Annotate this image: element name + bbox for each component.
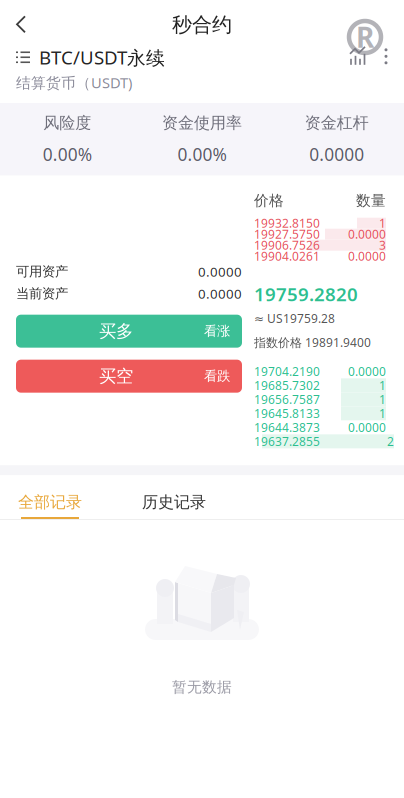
staticText: 资金使用率 <box>162 113 242 133</box>
staticText: 数量 <box>356 192 386 210</box>
staticText: 1 <box>379 405 386 421</box>
staticText: 历史记录 <box>142 492 206 512</box>
staticText: 2 <box>387 433 394 449</box>
staticText: 19704.2190 <box>254 363 320 379</box>
button[interactable]: Chart <box>350 47 366 66</box>
staticText: 0.0000 <box>348 363 386 379</box>
staticText: 0.0000 <box>198 263 242 280</box>
staticText: 结算货币（USDT) <box>16 73 132 92</box>
staticText: 0.0000 <box>348 419 386 435</box>
staticText: BTC/USDT永续 <box>39 45 165 70</box>
staticText: 19932.8150 <box>254 215 320 231</box>
staticText: 当前资产 <box>16 285 68 302</box>
staticText: 0.0000 <box>198 285 242 302</box>
staticText: 19644.3873 <box>254 419 320 435</box>
staticText: 19685.7302 <box>254 377 320 393</box>
staticText: 买空 <box>99 365 133 387</box>
staticText: 风险度 <box>43 113 91 133</box>
staticText: 资金杠杆 <box>305 113 369 133</box>
button[interactable]: 买空 <box>16 360 242 393</box>
staticText: 看涨 <box>204 323 230 339</box>
staticText: 19656.7587 <box>254 391 320 407</box>
staticText: 1 <box>379 377 386 393</box>
staticText: 价格 <box>254 192 284 210</box>
staticText: 1 <box>379 215 386 231</box>
staticText: 3 <box>379 237 386 253</box>
staticText: 19759.2820 <box>254 282 358 306</box>
staticText: 买多 <box>99 320 133 342</box>
staticText: R <box>356 18 374 56</box>
staticText: 看跌 <box>204 368 230 384</box>
button[interactable]: 全部记录 <box>13 492 87 519</box>
staticText: 可用资产 <box>16 263 68 280</box>
staticText: 0.0000 <box>348 248 386 264</box>
staticText: 19904.0261 <box>254 248 320 264</box>
button[interactable]: Back <box>0 5 44 45</box>
staticText: 0.00% <box>177 143 226 166</box>
staticText: 指数价格 19891.9400 <box>254 334 371 350</box>
button[interactable]: BTC/USDT永续 <box>16 45 165 70</box>
staticText: 全部记录 <box>18 492 82 512</box>
staticText: 19927.5750 <box>254 226 320 242</box>
staticText: ≈ US19759.28 <box>254 310 335 326</box>
staticText: 19645.8133 <box>254 405 320 421</box>
staticText: 0.0000 <box>309 143 364 166</box>
staticText: 0.00% <box>43 143 92 166</box>
staticText: 1 <box>379 391 386 407</box>
staticText: 19906.7526 <box>254 237 320 253</box>
staticText: 0.0000 <box>348 226 386 242</box>
button[interactable]: More <box>384 48 388 65</box>
button[interactable]: 买多 <box>16 315 242 348</box>
button[interactable]: 历史记录 <box>137 492 211 519</box>
staticText: 秒合约 <box>172 12 232 37</box>
staticText: 暂无数据 <box>172 678 232 696</box>
staticText: 19637.2855 <box>254 433 320 449</box>
